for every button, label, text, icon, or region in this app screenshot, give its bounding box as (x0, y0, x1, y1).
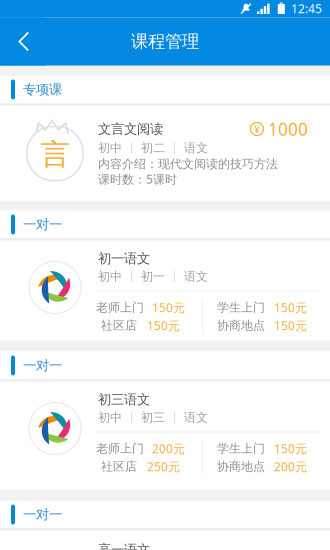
staticText: 初一语文 (98, 250, 150, 267)
staticText: 150元 (152, 299, 185, 315)
button[interactable]: Back (0, 17, 46, 65)
staticText: 课时数：5课时 (98, 171, 177, 187)
staticText: 老师上门 (96, 300, 144, 315)
staticText: 社区店 (101, 459, 137, 474)
staticText: 初一 (141, 269, 165, 284)
staticText: 200元 (152, 440, 185, 456)
staticText: 初三 (141, 410, 165, 425)
staticText: 初中 (98, 410, 122, 425)
staticText: 文言文阅读 (98, 121, 163, 137)
staticText: 初三语文 (98, 391, 150, 408)
staticText: 言 (40, 136, 69, 172)
staticText: 社区店 (101, 318, 137, 333)
staticText: 语文 (184, 269, 208, 284)
staticText: 老师上门 (96, 441, 144, 456)
staticText: 150元 (274, 299, 307, 315)
button[interactable]: 高一语文 (0, 530, 330, 550)
staticText: 一对一 (23, 506, 62, 523)
staticText: 12:45 (291, 0, 322, 16)
staticText: 课程管理 (131, 31, 199, 52)
staticText: 协商地点 (217, 318, 265, 333)
staticText: 初中 (98, 269, 122, 284)
button[interactable]: 初一语文 (0, 240, 330, 340)
staticText: 1000 (268, 117, 308, 140)
staticText: 学生上门 (217, 300, 265, 315)
staticText: 专项课 (23, 81, 62, 98)
button[interactable]: 初三语文 (0, 381, 330, 489)
staticText: 一对一 (23, 357, 62, 374)
staticText: 150元 (274, 440, 307, 456)
button[interactable]: 言 (0, 105, 330, 200)
staticText: 协商地点 (217, 459, 265, 474)
staticText: 初中 (98, 141, 122, 155)
staticText: 初二 (141, 141, 165, 155)
staticText: 高一语文 (98, 541, 150, 550)
staticText: 250元 (147, 458, 180, 474)
staticText: 学生上门 (217, 441, 265, 456)
staticText: 一对一 (23, 216, 62, 233)
staticText: 150元 (147, 317, 180, 333)
staticText: ¥ (254, 122, 260, 136)
staticText: 150元 (274, 317, 307, 333)
staticText: 200元 (274, 458, 307, 474)
staticText: 语文 (184, 141, 208, 155)
staticText: 内容介绍：现代文阅读的技巧方法 (98, 157, 278, 171)
staticText: 语文 (184, 410, 208, 425)
